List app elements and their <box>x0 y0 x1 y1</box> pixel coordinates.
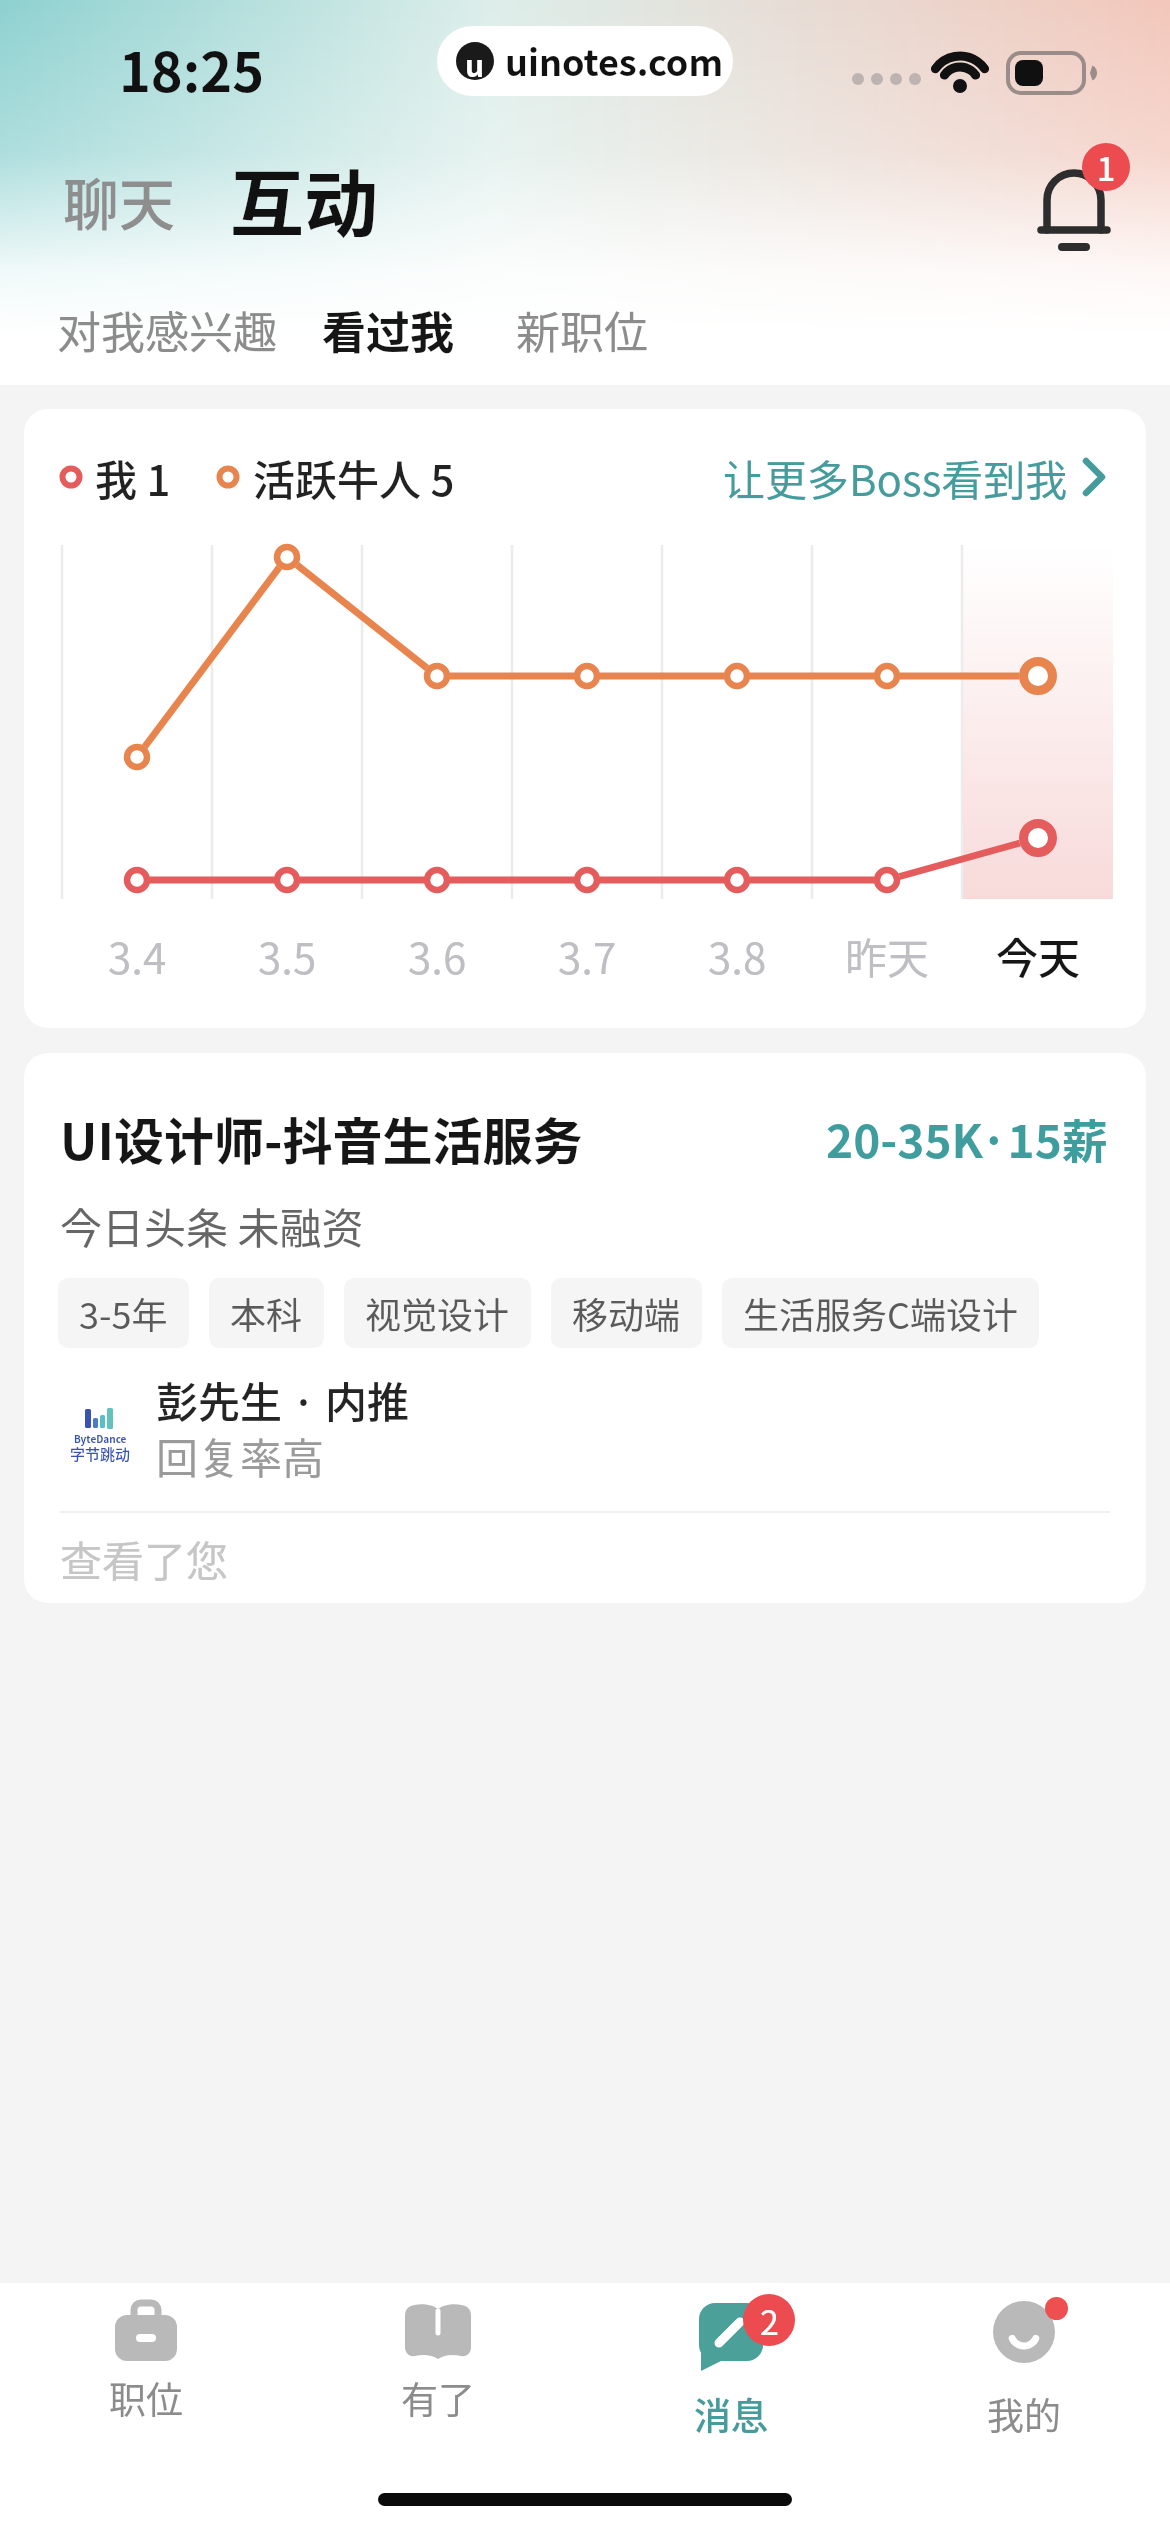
staticText: 职位 <box>109 2371 183 2425</box>
staticText: 2 <box>760 2296 779 2345</box>
staticText: 消息 <box>694 2387 768 2441</box>
staticText: 我 1 <box>95 447 171 508</box>
staticText: 我的 <box>987 2387 1061 2441</box>
staticText: 生活服务C端设计 <box>743 1287 1018 1339</box>
staticText: 视觉设计 <box>365 1287 510 1339</box>
button[interactable] <box>754 439 1124 515</box>
staticText: 互动 <box>230 145 378 252</box>
staticText: ByteDance <box>74 1431 127 1445</box>
staticText: UI设计师-抖音生活服务 <box>60 1102 583 1174</box>
staticText: 3.6 <box>408 925 467 986</box>
staticText: 1 <box>1097 144 1116 190</box>
staticText: 18:25 <box>119 29 264 107</box>
staticText: 本科 <box>230 1287 303 1339</box>
staticText: 字节跳动 <box>70 1443 131 1465</box>
staticText: 20-35K·15薪 <box>826 1105 1108 1172</box>
button[interactable] <box>1035 160 1135 260</box>
staticText: 3.4 <box>108 925 167 986</box>
staticText: u <box>465 42 485 80</box>
staticText: 彭先生 · 内推 <box>156 1369 410 1430</box>
button[interactable]: 2 <box>584 2283 877 2443</box>
staticText: 3.7 <box>558 925 617 986</box>
button[interactable]: 看过我 <box>322 290 454 370</box>
staticText: 聊天 <box>63 160 175 241</box>
staticText: 回复率高 <box>156 1425 325 1486</box>
staticText: 今天 <box>996 925 1081 986</box>
staticText: 3.5 <box>258 925 317 986</box>
staticText: 新职位 <box>516 298 648 362</box>
staticText: 昨天 <box>845 925 930 986</box>
button[interactable]: 新职位 <box>516 290 648 370</box>
staticText: 对我感兴趣 <box>57 298 277 362</box>
staticText: 查看了您 <box>60 1528 229 1589</box>
staticText: 活跃牛人 5 <box>253 447 455 508</box>
button[interactable]: 有了 <box>292 2283 584 2443</box>
button[interactable]: 对我感兴趣 <box>57 290 277 370</box>
staticText: 移动端 <box>572 1287 681 1339</box>
button[interactable]: 职位 <box>0 2283 292 2443</box>
staticText: uinotes.com <box>505 34 724 86</box>
staticText: 3-5年 <box>79 1287 168 1339</box>
staticText: 让更多Boss看到我 <box>723 447 1068 508</box>
button[interactable]: 我的 <box>877 2283 1170 2443</box>
button[interactable]: UI设计师-抖音生活服务 <box>24 1053 1146 1603</box>
staticText: 今日头条 未融资 <box>60 1195 364 1256</box>
staticText: 3.8 <box>708 925 767 986</box>
staticText: 有了 <box>401 2371 475 2425</box>
staticText: 看过我 <box>322 298 454 362</box>
